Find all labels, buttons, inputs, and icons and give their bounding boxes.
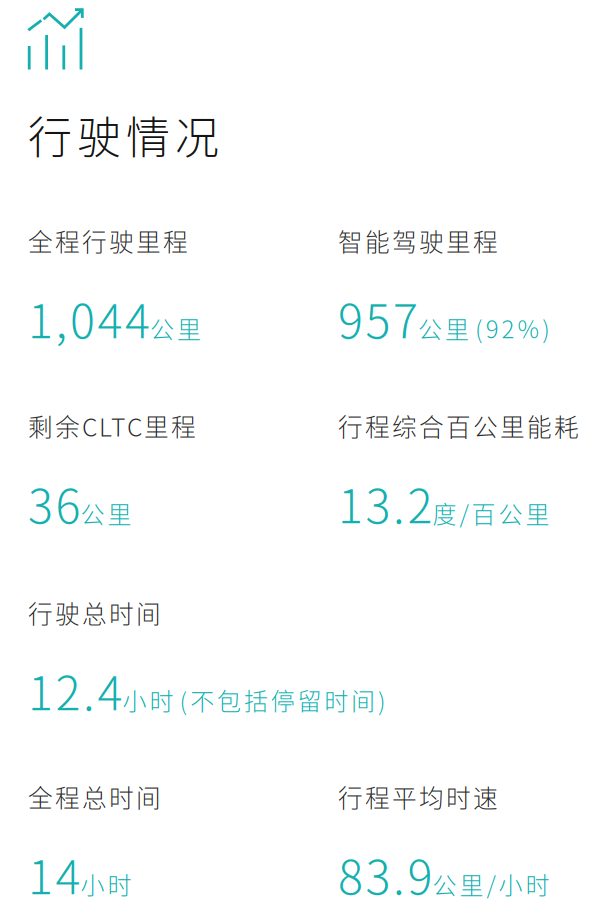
staticText: 小时 — [80, 866, 131, 901]
staticText: 行驶情况 — [28, 103, 219, 167]
staticText: 12.4 — [28, 656, 122, 724]
staticText: 1,044 — [28, 284, 150, 352]
staticText: 行程综合百公里能耗 — [338, 408, 579, 444]
staticText: (92%) — [475, 310, 550, 345]
staticText: 小时 — [122, 682, 173, 717]
staticText: 957 — [338, 284, 418, 352]
staticText: 36 — [28, 469, 80, 537]
staticText: (不包括停留时间) — [179, 682, 386, 717]
staticText: 公里/小时 — [432, 866, 549, 901]
staticText: 剩余CLTC里程 — [28, 408, 196, 444]
staticText: 公里 — [418, 310, 469, 345]
staticText: 83.9 — [338, 840, 432, 904]
staticText: 行程平均时速 — [338, 779, 498, 815]
staticText: 智能驾驶里程 — [338, 223, 498, 259]
staticText: 行驶总时间 — [28, 595, 161, 631]
staticText: 全程总时间 — [28, 779, 161, 815]
staticText: 公里 — [80, 495, 131, 530]
staticText: 14 — [28, 840, 80, 904]
staticText: 13.2 — [338, 469, 432, 537]
staticText: 公里 — [150, 310, 201, 345]
staticText: 度/百公里 — [432, 495, 549, 530]
staticText: 全程行驶里程 — [28, 223, 188, 259]
